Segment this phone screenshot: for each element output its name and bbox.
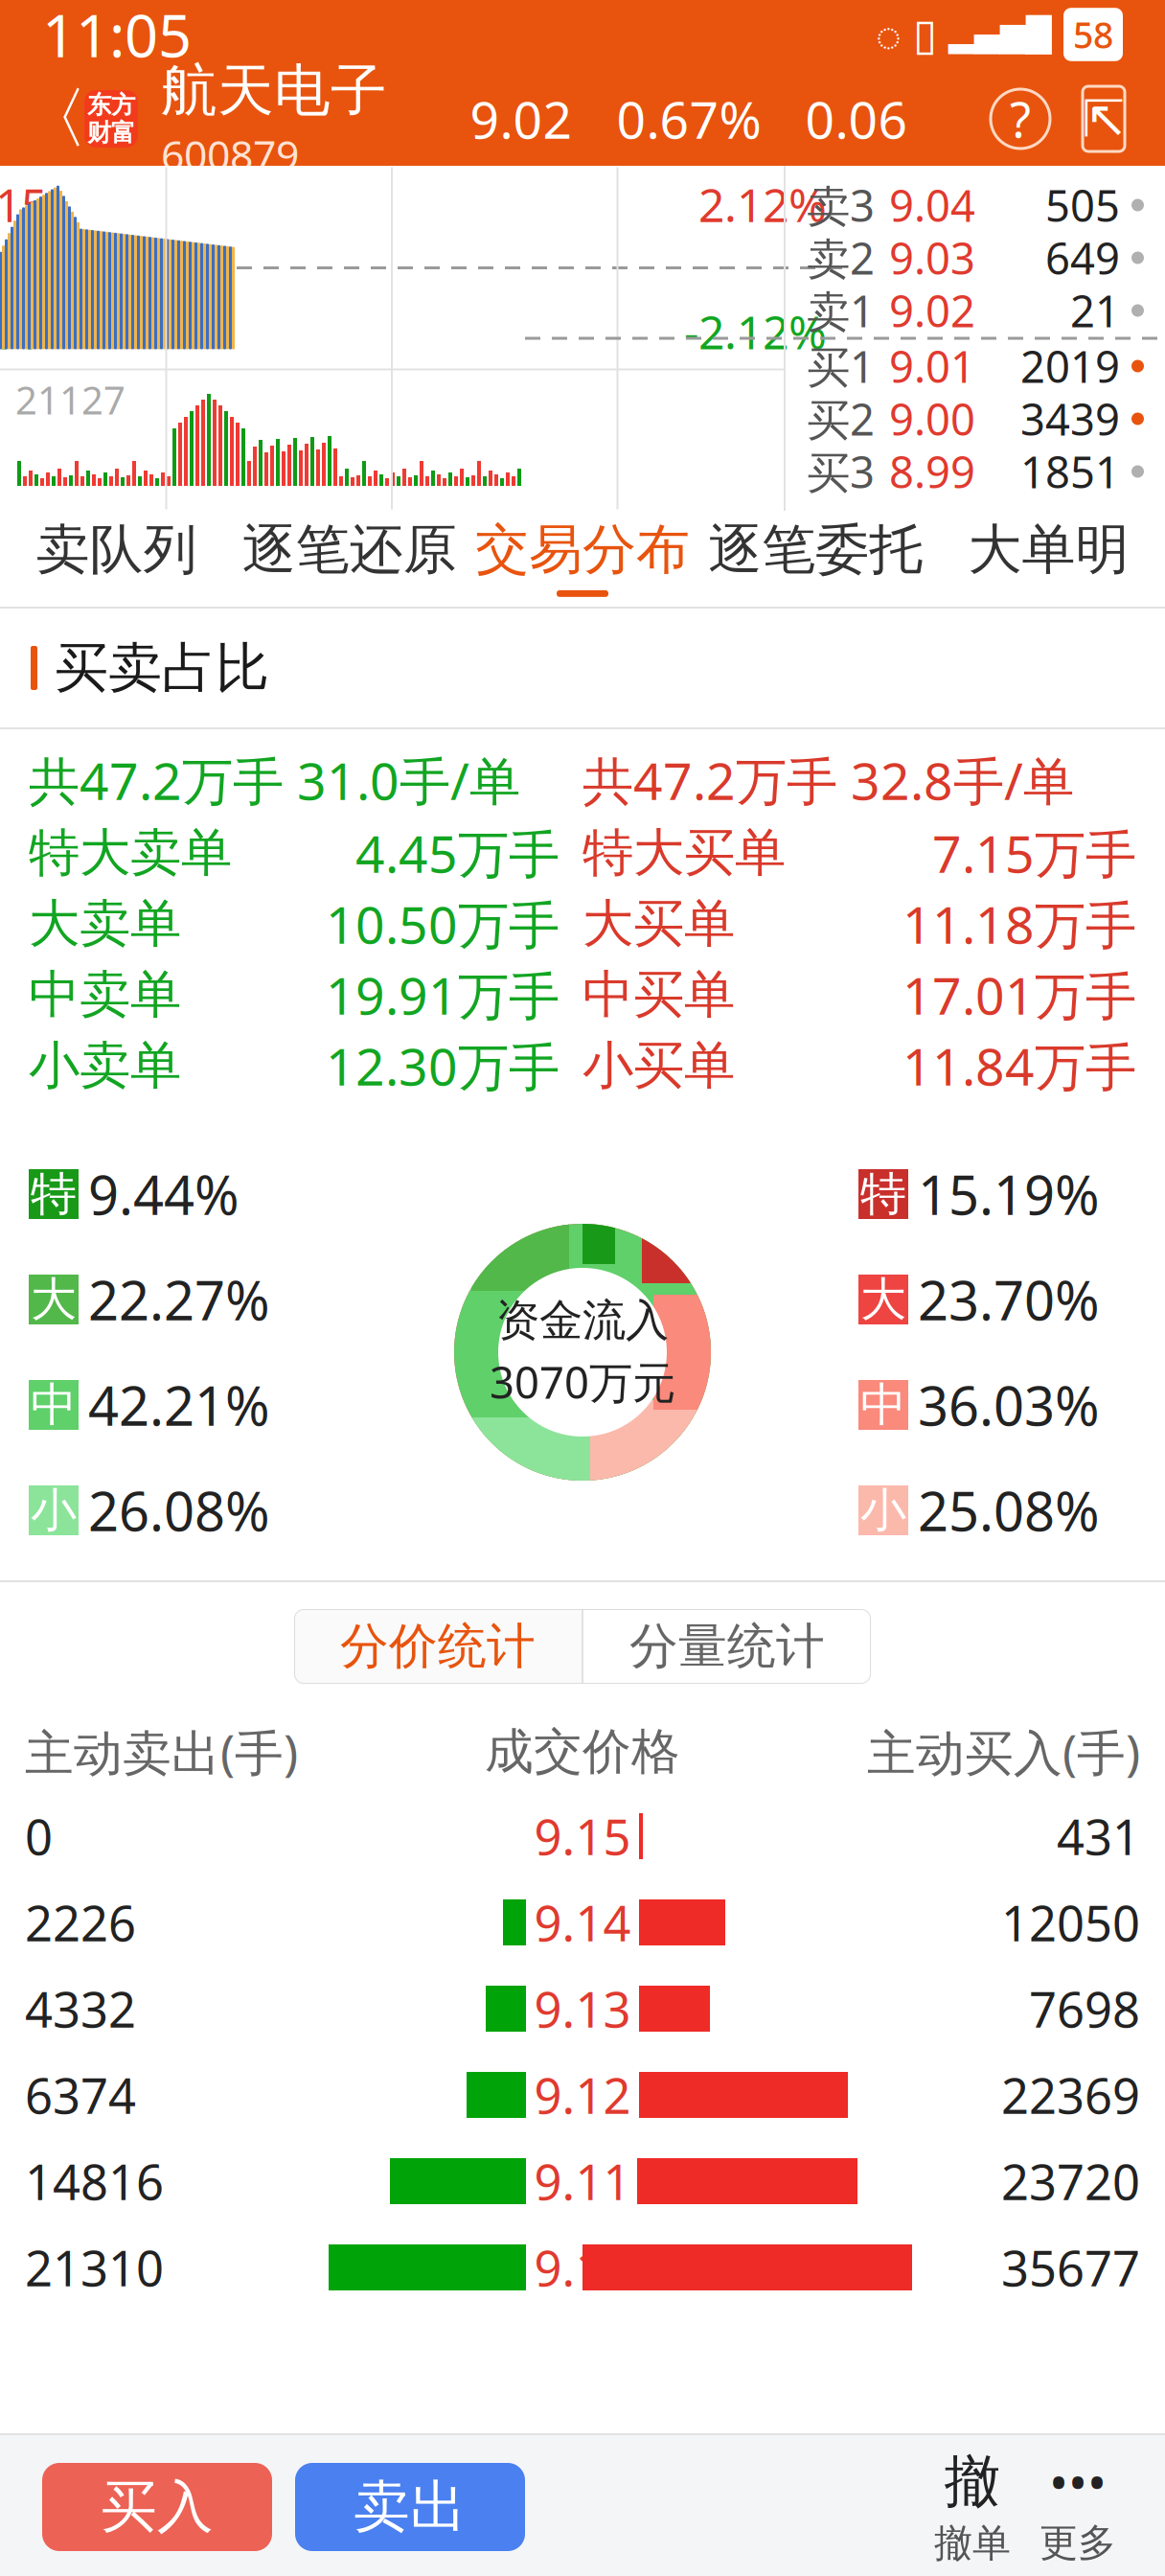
staticText: 9.44%	[88, 1158, 240, 1230]
button[interactable]: •••	[1025, 2455, 1131, 2559]
staticText: 505	[1045, 176, 1120, 234]
button[interactable]: 卖3	[786, 179, 1165, 231]
staticText: 9.15	[0, 174, 47, 235]
staticText: 资金流入	[496, 1294, 669, 1347]
staticText: 9.13	[534, 1976, 631, 2041]
button[interactable]: 大单明	[932, 511, 1165, 607]
button[interactable]: 6374	[0, 2052, 1165, 2138]
button[interactable]: 卖队列	[0, 511, 233, 607]
staticText: 买1	[807, 337, 875, 395]
button[interactable]: 逐笔委托	[699, 511, 932, 607]
staticText: 6374	[25, 2063, 136, 2127]
staticText: 特大买单	[582, 821, 786, 884]
button[interactable]: 买入	[42, 2463, 272, 2551]
staticText: 9.01	[889, 337, 975, 395]
button[interactable]: 买3	[786, 445, 1165, 498]
button[interactable]: 21310	[0, 2224, 1165, 2311]
staticText: 10.50万手	[326, 890, 560, 958]
button[interactable]: 逐笔还原	[233, 511, 466, 607]
staticText: 撤单	[934, 2520, 1011, 2567]
staticText: 航天电子	[161, 56, 387, 125]
staticText: 23.70%	[918, 1264, 1100, 1335]
button[interactable]: 撤	[920, 2455, 1025, 2559]
staticText: 撤	[944, 2447, 1001, 2516]
staticText: 7.15万手	[932, 819, 1136, 887]
button[interactable]: 返回	[25, 78, 84, 160]
staticText: 9.03	[889, 229, 975, 287]
button[interactable]: 帮助	[991, 89, 1050, 149]
staticText: 特	[31, 1166, 77, 1222]
button[interactable]: 卖1	[786, 284, 1165, 337]
staticText: 财富	[87, 118, 135, 148]
staticText: ▯	[913, 10, 937, 59]
staticText: 9.00	[889, 390, 975, 448]
staticText: 23720	[1001, 2149, 1140, 2213]
staticText: 9.12	[534, 2063, 631, 2127]
staticText: 8.90	[0, 242, 34, 293]
staticText: 0	[25, 1804, 53, 1868]
button[interactable]: 买2	[786, 392, 1165, 445]
staticText: 0.67%	[617, 85, 761, 153]
staticText: 11.84万手	[902, 1032, 1136, 1100]
staticText: 逐笔还原	[242, 517, 457, 583]
staticText: 21	[1070, 282, 1120, 339]
staticText: 卖1	[807, 282, 875, 339]
button[interactable]: 0	[0, 1793, 1165, 1879]
staticText: 4.45万手	[355, 819, 560, 887]
staticText: 买3	[807, 443, 875, 500]
staticText: 22.27%	[88, 1264, 270, 1335]
staticText: 9.11	[534, 2149, 631, 2213]
staticText: 中卖单	[29, 963, 181, 1026]
staticText: 21127	[15, 374, 126, 425]
staticText: 42.21%	[88, 1369, 270, 1441]
staticText: 小买单	[582, 1034, 735, 1097]
staticText: 19.91万手	[326, 961, 560, 1029]
staticText: 分量统计	[629, 1617, 825, 1676]
button[interactable]: 4332	[0, 1966, 1165, 2052]
staticText: 9.02	[470, 85, 572, 153]
staticText: 3070万元	[490, 1353, 675, 1411]
staticText: 26.08%	[88, 1475, 270, 1546]
button[interactable]: 买1	[786, 340, 1165, 392]
button[interactable]: 东方财富	[84, 90, 138, 148]
staticText: 17.01万手	[902, 961, 1136, 1029]
button[interactable]: 2226	[0, 1879, 1165, 1966]
staticText: 卖出	[354, 2472, 467, 2542]
staticText: 36.03%	[918, 1369, 1100, 1441]
staticText: 小卖单	[29, 1034, 181, 1097]
button[interactable]: 14816	[0, 2138, 1165, 2224]
staticText: 中	[860, 1377, 906, 1433]
staticText: ⇱	[1082, 90, 1125, 148]
staticText: 0.06	[805, 85, 908, 153]
button[interactable]: 卖2	[786, 231, 1165, 284]
staticText: 2226	[25, 1890, 136, 1955]
staticText: 4332	[25, 1976, 136, 2041]
button[interactable]: 分价统计	[294, 1609, 582, 1684]
staticText: 11:05	[42, 0, 192, 74]
staticText: 25.08%	[918, 1475, 1100, 1546]
staticText: 分价统计	[340, 1617, 536, 1676]
staticText: 中	[31, 1377, 77, 1433]
staticText: 7698	[1029, 1976, 1140, 2041]
staticText: 14816	[25, 2149, 164, 2213]
staticText: 15.19%	[918, 1158, 1100, 1230]
staticText: 9.02	[889, 282, 975, 339]
staticText: 9.15	[534, 1804, 631, 1868]
staticText: 交易分布	[475, 517, 690, 583]
staticText: 12050	[1001, 1890, 1140, 1955]
staticText: 中买单	[582, 963, 735, 1026]
staticText: 2.12%	[698, 174, 827, 235]
staticText: 35677	[1001, 2235, 1140, 2300]
staticText: 649	[1045, 229, 1120, 287]
button[interactable]: 交易分布	[466, 511, 699, 607]
staticText: 卖3	[807, 176, 875, 234]
button[interactable]: 分量统计	[583, 1609, 871, 1684]
staticText: 大	[31, 1271, 77, 1328]
staticText: 431	[1057, 1804, 1140, 1868]
staticText: 3439	[1020, 390, 1120, 448]
button[interactable]: 卖出	[295, 2463, 525, 2551]
staticText: 大买单	[582, 892, 735, 955]
button[interactable]: 横屏	[1067, 84, 1140, 153]
staticText: 小	[31, 1482, 77, 1539]
staticText: 卖队列	[36, 517, 197, 583]
